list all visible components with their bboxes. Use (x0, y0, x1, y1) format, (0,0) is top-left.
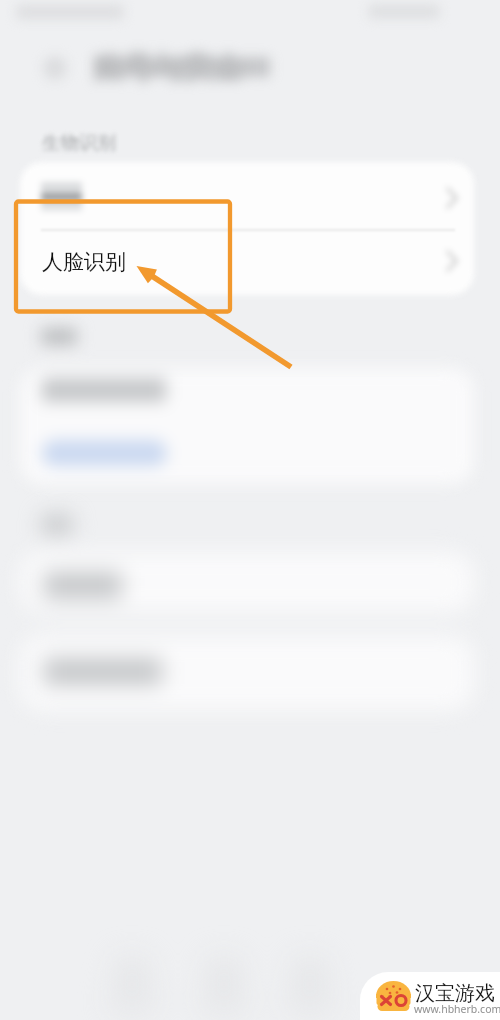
button[interactable]: Watermark hbherb.com (360, 972, 500, 1020)
button[interactable] (20, 230, 474, 295)
staticText: 人脸识别 (42, 249, 126, 275)
other: Annotation highlight (0, 0, 500, 1020)
staticText: 汉宝游戏 (415, 981, 495, 1006)
staticText: www.hbherb.com (414, 1002, 500, 1016)
